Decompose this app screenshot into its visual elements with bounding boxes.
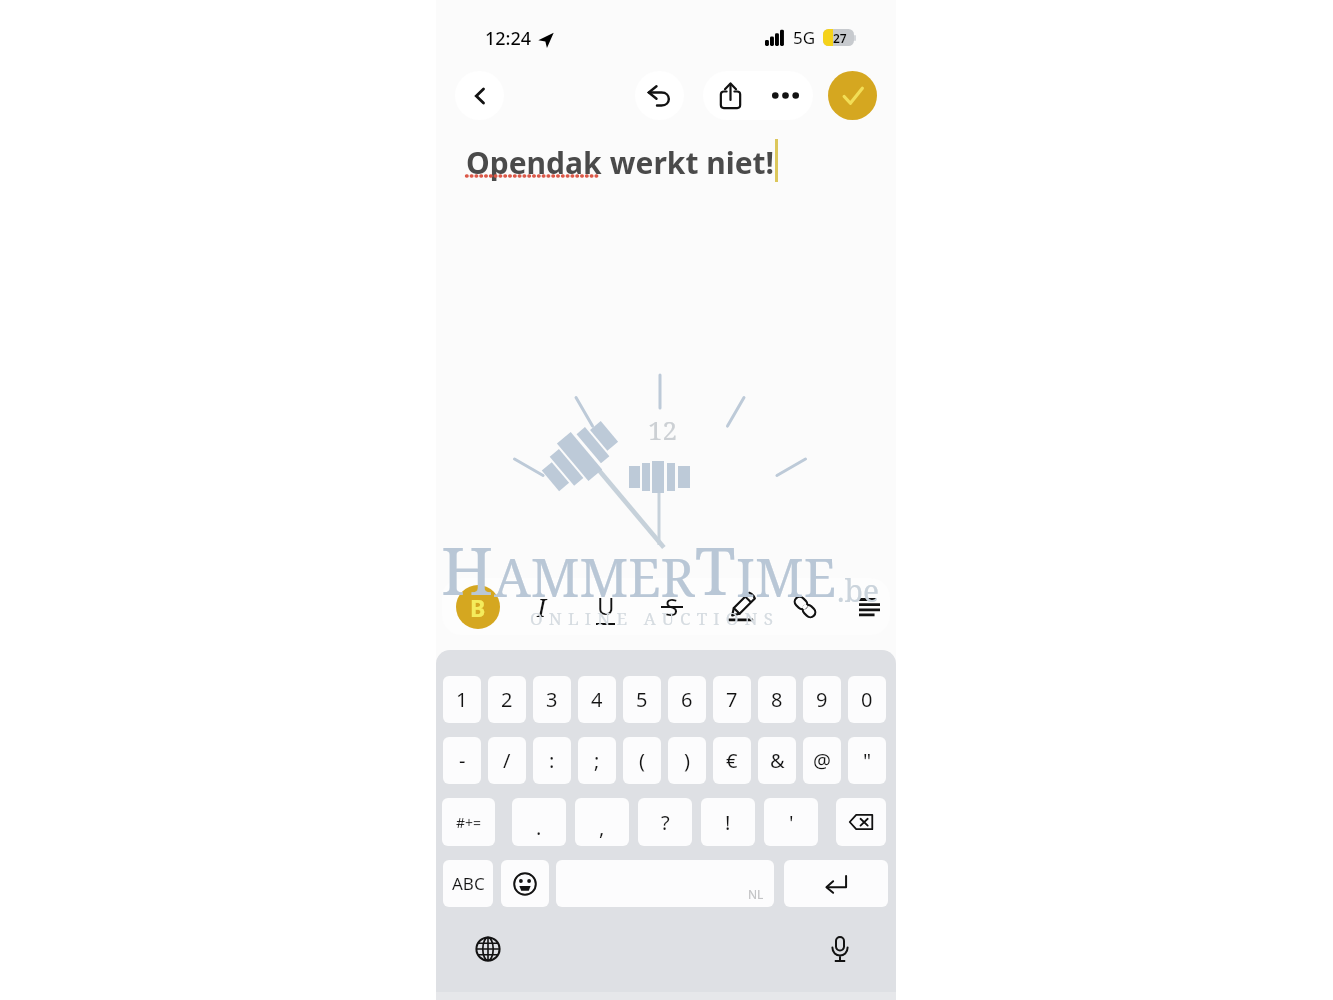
button[interactable]: 1 (443, 676, 481, 723)
button[interactable]: Insert link (777, 578, 833, 635)
staticText: ( (639, 747, 645, 774)
staticText: I (537, 590, 547, 624)
staticText: .be (837, 570, 879, 611)
button[interactable]: 6 (668, 676, 706, 723)
button[interactable]: Strikethrough (644, 578, 700, 635)
button[interactable]: . (512, 798, 566, 846)
button[interactable]: , (575, 798, 629, 846)
button[interactable]: Backspace (836, 798, 886, 846)
button[interactable]: ) (668, 737, 706, 784)
button[interactable]: ; (578, 737, 616, 784)
staticText: & (770, 747, 785, 774)
button[interactable]: " (848, 737, 886, 784)
button[interactable]: : (533, 737, 571, 784)
staticText: T (695, 524, 736, 614)
button[interactable]: & (758, 737, 796, 784)
button[interactable]: Back (455, 71, 504, 120)
staticText: 9 (816, 686, 828, 713)
staticText: 4 (591, 686, 603, 713)
staticText: NL (748, 886, 764, 902)
button[interactable]: - (443, 737, 481, 784)
button[interactable]: Return (784, 860, 888, 907)
button[interactable]: 9 (803, 676, 841, 723)
button[interactable]: 5 (623, 676, 661, 723)
button[interactable]: 0 (848, 676, 886, 723)
staticText: € (726, 747, 738, 774)
button[interactable]: 7 (713, 676, 751, 723)
button[interactable]: 2 (488, 676, 526, 723)
staticText: 5 (636, 686, 648, 713)
button[interactable]: 3 (533, 676, 571, 723)
staticText: 2 (501, 686, 513, 713)
staticText: U (597, 589, 615, 622)
staticText: : (549, 747, 555, 774)
staticText: - (459, 747, 466, 774)
staticText: @ (813, 747, 831, 774)
staticText: / (503, 747, 511, 774)
button[interactable]: ! (701, 798, 755, 846)
staticText: ABC (452, 872, 485, 895)
button[interactable]: More options (758, 71, 813, 120)
staticText: AMMER (494, 541, 695, 612)
staticText: ' (789, 809, 794, 836)
button[interactable]: Undo (635, 71, 684, 120)
staticText: 0 (861, 686, 873, 713)
button[interactable]: Change keyboard (470, 931, 506, 967)
button[interactable]: Share (703, 71, 758, 120)
staticText: #+= (456, 813, 482, 832)
button[interactable]: ABC (443, 860, 493, 907)
button[interactable]: € (713, 737, 751, 784)
staticText: werkt niet! (602, 142, 775, 183)
button[interactable]: ( (623, 737, 661, 784)
button[interactable]: Dictate (822, 931, 858, 967)
button[interactable]: Done (828, 71, 877, 120)
button[interactable]: 4 (578, 676, 616, 723)
staticText: 12:24 (485, 26, 532, 51)
button[interactable]: Space (556, 860, 774, 907)
staticText: . (536, 814, 542, 841)
button[interactable]: 8 (758, 676, 796, 723)
staticText: 3 (546, 686, 558, 713)
staticText: B (470, 592, 486, 623)
button[interactable]: Emoji (501, 860, 549, 907)
button[interactable]: Italic (514, 578, 570, 635)
button[interactable]: Bold (450, 578, 506, 635)
staticText: S (665, 590, 679, 623)
staticText: , (599, 814, 605, 841)
staticText: 5G (793, 26, 816, 49)
staticText: 7 (726, 686, 738, 713)
button[interactable]: ' (764, 798, 818, 846)
staticText: H (441, 524, 494, 614)
button[interactable]: Highlight (715, 578, 771, 635)
staticText: 12 (648, 412, 678, 447)
button[interactable]: #+= (442, 798, 495, 846)
staticText: 6 (681, 686, 693, 713)
staticText: ; (594, 747, 600, 774)
staticText: IME (736, 541, 837, 612)
staticText: 1 (456, 686, 468, 713)
staticText: ! (725, 809, 731, 836)
staticText: 8 (771, 686, 783, 713)
staticText: 27 (833, 30, 847, 46)
button[interactable]: / (488, 737, 526, 784)
button[interactable]: Underline (577, 578, 633, 635)
staticText: ? (661, 809, 670, 836)
staticText: Opendak (466, 142, 602, 183)
button[interactable]: ? (638, 798, 692, 846)
staticText: ) (684, 747, 690, 774)
button[interactable]: @ (803, 737, 841, 784)
staticText: " (863, 747, 872, 774)
staticText: ONLINE AUCTIONS (530, 607, 780, 630)
button[interactable]: Align (841, 578, 890, 635)
